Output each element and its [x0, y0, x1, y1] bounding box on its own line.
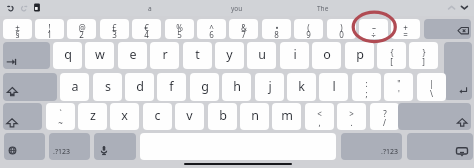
button[interactable]: a — [124, 0, 176, 16]
button[interactable]: Caps lock — [3, 73, 57, 101]
button[interactable]: ^ 6 — [197, 19, 226, 39]
button[interactable]: ? / — [370, 103, 399, 130]
button[interactable]: : ; — [352, 73, 381, 101]
button[interactable]: Change keyboard — [4, 133, 45, 160]
staticText: l — [332, 78, 336, 95]
button[interactable]: ) 0 — [327, 19, 356, 39]
button[interactable]: > . — [337, 103, 366, 130]
button[interactable]: w — [85, 42, 114, 69]
staticText: ÷ — [371, 29, 376, 39]
staticText: x — [121, 107, 128, 124]
button[interactable]: & 7 — [229, 19, 258, 39]
button[interactable]: € 4 — [132, 19, 161, 39]
button[interactable]: Return — [444, 42, 472, 100]
button[interactable]: m — [272, 103, 301, 130]
button[interactable]: d — [125, 73, 154, 101]
button[interactable]: Shift — [398, 103, 471, 130]
button[interactable]: Dictate — [94, 133, 136, 160]
button[interactable]: The — [297, 0, 349, 16]
button[interactable]: a — [60, 73, 89, 101]
staticText: 6 — [209, 29, 214, 39]
button[interactable]: t — [183, 42, 212, 69]
staticText: 3 — [112, 29, 117, 39]
staticText: • — [275, 22, 279, 33]
button[interactable]: q — [53, 42, 82, 69]
button[interactable]: k — [287, 73, 316, 101]
button[interactable]: l — [319, 73, 348, 101]
staticText: 9 — [306, 29, 311, 39]
button[interactable]: Hide keyboard — [407, 133, 473, 160]
staticText: j — [268, 78, 272, 95]
staticText: k — [298, 78, 305, 95]
button[interactable]: i — [280, 42, 309, 69]
button[interactable]: ( 9 — [294, 19, 323, 39]
staticText: , — [318, 117, 321, 128]
button[interactable]: @ 2 — [67, 19, 96, 39]
button[interactable]: Numbers — [341, 133, 402, 160]
staticText: a — [71, 78, 79, 95]
button[interactable]: + = — [391, 19, 420, 39]
staticText: q — [64, 46, 72, 63]
staticText: ` — [59, 108, 62, 119]
button[interactable]: – ÷ — [359, 19, 388, 39]
staticText: z — [90, 107, 96, 124]
button[interactable]: o — [312, 42, 341, 69]
button[interactable]: you — [211, 0, 263, 16]
button[interactable]: Numbers — [49, 133, 90, 160]
button[interactable]: | \ — [417, 73, 446, 101]
staticText: f — [169, 78, 174, 95]
button[interactable]: c — [143, 103, 172, 130]
staticText: ~ — [58, 117, 63, 128]
staticText: 1 — [47, 29, 52, 39]
button[interactable]: p — [345, 42, 374, 69]
button[interactable]: h — [222, 73, 251, 101]
staticText: 4 — [144, 29, 149, 39]
button[interactable]: j — [255, 73, 284, 101]
staticText: c — [154, 107, 161, 124]
button[interactable]: v — [175, 103, 204, 130]
button[interactable]: Shift — [3, 103, 42, 130]
staticText: i — [293, 46, 297, 63]
button[interactable]: £ 3 — [100, 19, 129, 39]
button[interactable]: • 8 — [262, 19, 291, 39]
button[interactable]: z — [78, 103, 107, 130]
staticText: ( — [307, 22, 310, 33]
button[interactable]: " ' — [384, 73, 413, 101]
staticText: you — [231, 4, 243, 13]
button[interactable]: { [ — [377, 42, 406, 69]
button[interactable]: g — [190, 73, 219, 101]
button[interactable]: Tab — [3, 42, 50, 69]
button[interactable]: x — [110, 103, 139, 130]
button[interactable]: } ] — [409, 42, 438, 69]
button[interactable]: e — [118, 42, 147, 69]
button[interactable]: < , — [305, 103, 334, 130]
button[interactable]: b — [208, 103, 237, 130]
button[interactable]: Backspace — [424, 19, 471, 39]
staticText: ! — [48, 22, 51, 33]
staticText: + — [403, 22, 408, 33]
staticText: 7 — [241, 29, 246, 39]
staticText: £ — [112, 22, 117, 33]
button[interactable]: ± § — [3, 19, 32, 39]
staticText: < — [317, 108, 322, 119]
button[interactable]: u — [247, 42, 276, 69]
staticText: { — [390, 47, 394, 58]
staticText: } — [422, 47, 426, 58]
staticText: ^ — [209, 22, 214, 33]
button[interactable]: ! 1 — [35, 19, 64, 39]
staticText: % — [176, 22, 183, 33]
staticText: .?123 — [53, 147, 70, 157]
staticText: ± — [15, 22, 20, 33]
button[interactable]: n — [240, 103, 269, 130]
button[interactable]: y — [215, 42, 244, 69]
staticText: n — [251, 107, 259, 124]
staticText: 2 — [79, 29, 84, 39]
button[interactable]: s — [93, 73, 122, 101]
staticText: m — [281, 107, 293, 124]
button[interactable]: f — [157, 73, 186, 101]
button[interactable]: r — [150, 42, 179, 69]
button[interactable]: % 5 — [165, 19, 194, 39]
staticText: s — [105, 78, 111, 95]
button[interactable]: ` ~ — [46, 103, 75, 130]
